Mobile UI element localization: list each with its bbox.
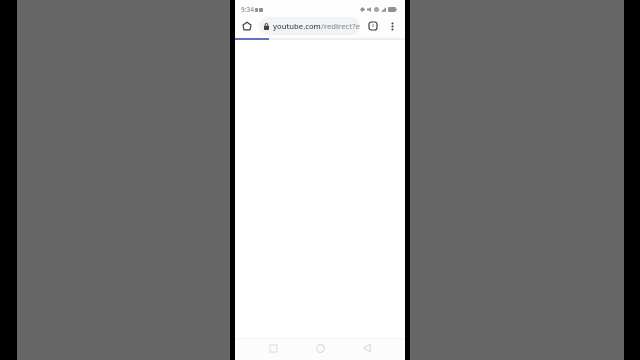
button[interactable]: Home bbox=[310, 338, 330, 358]
button[interactable]: Home bbox=[237, 16, 257, 36]
button[interactable]: More options bbox=[383, 17, 401, 35]
staticText: youtube.com bbox=[273, 21, 321, 31]
button[interactable]: Switch tabs bbox=[364, 17, 382, 35]
button[interactable]: youtube.com bbox=[259, 17, 360, 35]
staticText: /redirect?e bbox=[321, 21, 360, 31]
staticText: 9:34 bbox=[241, 5, 254, 14]
staticText: 8 bbox=[372, 23, 375, 29]
button[interactable]: Recent apps bbox=[263, 338, 283, 358]
button[interactable]: Back bbox=[357, 338, 377, 358]
